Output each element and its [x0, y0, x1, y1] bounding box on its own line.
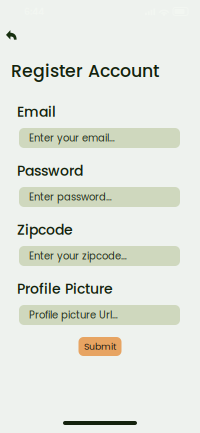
staticText: Enter your email…: [29, 131, 115, 145]
button[interactable]: Back: [0, 23, 200, 47]
staticText: Profile Picture: [17, 279, 113, 299]
button[interactable]: Submit: [78, 337, 121, 356]
staticText: Submit: [84, 340, 116, 353]
staticText: Enter your zipcode…: [29, 249, 127, 263]
staticText: Password: [17, 161, 83, 181]
staticText: Register Account: [11, 59, 159, 83]
staticText: Profile picture Url…: [29, 308, 118, 322]
staticText: Zipcode: [17, 220, 73, 240]
staticText: Enter password…: [29, 190, 112, 204]
staticText: Email: [17, 102, 56, 122]
